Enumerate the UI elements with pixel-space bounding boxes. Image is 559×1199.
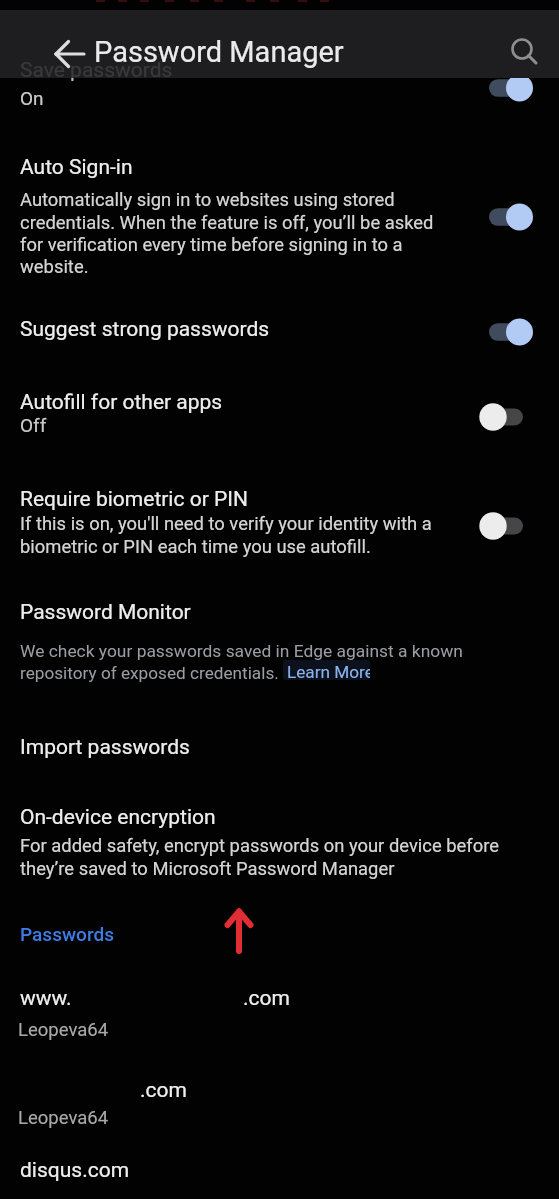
button[interactable]: disqus.com: [0, 1148, 559, 1199]
staticText: Passwords: [20, 923, 114, 945]
staticText: Password Manager: [94, 35, 344, 69]
staticText: Password Monitor: [20, 600, 191, 625]
staticText: Leopeva64: [18, 1019, 109, 1041]
button[interactable]: On-device encryption: [0, 792, 559, 892]
button[interactable]: Suggest strong passwords: [0, 300, 559, 364]
staticText: .com: [140, 1078, 187, 1103]
staticText: Auto Sign-in: [20, 155, 133, 180]
staticText: Leopeva64: [18, 1107, 109, 1129]
button[interactable]: Autofill for other apps: [0, 376, 559, 456]
staticText: If this is on, you'll need to verify you…: [20, 513, 432, 557]
staticText: Require biometric or PIN: [20, 487, 248, 512]
staticText: Suggest strong passwords: [20, 317, 270, 342]
button[interactable]: .com: [0, 1064, 559, 1146]
staticText: www.: [20, 986, 72, 1011]
button[interactable]: Import passwords: [0, 718, 559, 778]
staticText: Autofill for other apps: [20, 390, 223, 415]
staticText: repository of exposed credentials.: [20, 663, 279, 683]
button[interactable]: Save passwords: [0, 44, 559, 118]
button[interactable]: Password Monitor: [0, 590, 559, 636]
staticText: Off: [20, 414, 47, 436]
staticText: Automatically sign in to websites using …: [20, 189, 434, 277]
staticText: On-device encryption: [20, 805, 216, 830]
button[interactable]: www.: [0, 974, 559, 1056]
staticText: For added safety, encrypt passwords on y…: [20, 835, 499, 879]
staticText: On: [20, 87, 44, 109]
button[interactable]: [44, 32, 88, 76]
staticText: Save passwords: [20, 58, 173, 83]
button[interactable]: [501, 28, 545, 72]
staticText: Learn More: [287, 662, 370, 680]
button[interactable]: Auto Sign-in: [0, 140, 559, 286]
staticText: Import passwords: [20, 735, 190, 760]
staticText: disqus.com: [20, 1158, 130, 1183]
staticText: We check your passwords saved in Edge ag…: [20, 641, 463, 661]
staticText: .com: [243, 986, 290, 1011]
button[interactable]: Require biometric or PIN: [0, 470, 559, 574]
button[interactable]: Learn More: [283, 660, 370, 680]
